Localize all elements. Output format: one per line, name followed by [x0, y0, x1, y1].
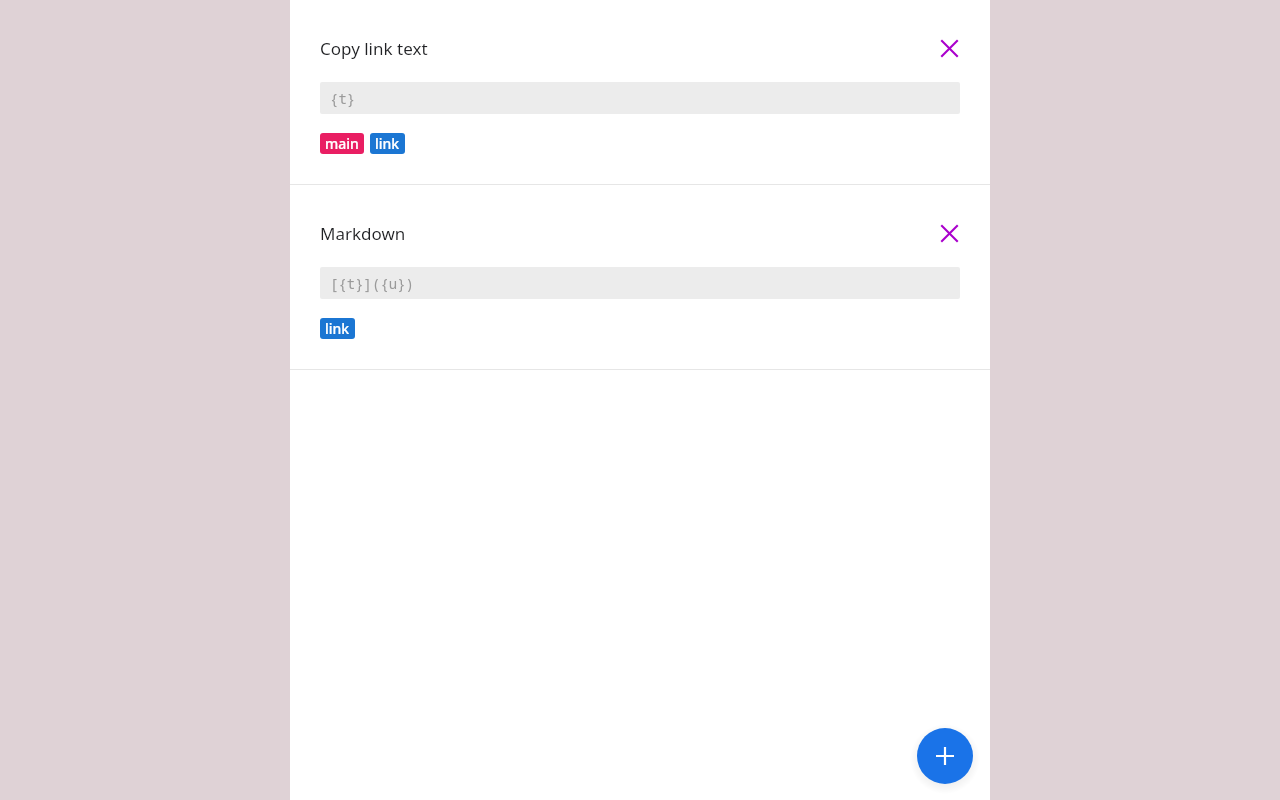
- staticText: main: [325, 134, 359, 153]
- staticText: [{t}]({u}): [330, 274, 414, 293]
- staticText: Copy link text: [320, 37, 932, 60]
- button[interactable]: Remove: [932, 31, 966, 65]
- staticText: link: [375, 134, 400, 153]
- button[interactable]: Remove: [932, 216, 966, 250]
- button[interactable]: Add: [917, 728, 973, 784]
- button[interactable]: {t}: [320, 82, 960, 114]
- staticText: Markdown: [320, 222, 932, 245]
- button[interactable]: main: [320, 133, 364, 154]
- button[interactable]: [{t}]({u}): [320, 267, 960, 299]
- staticText: link: [325, 319, 350, 338]
- button[interactable]: link: [320, 318, 355, 339]
- button[interactable]: link: [370, 133, 405, 154]
- staticText: {t}: [330, 89, 356, 108]
